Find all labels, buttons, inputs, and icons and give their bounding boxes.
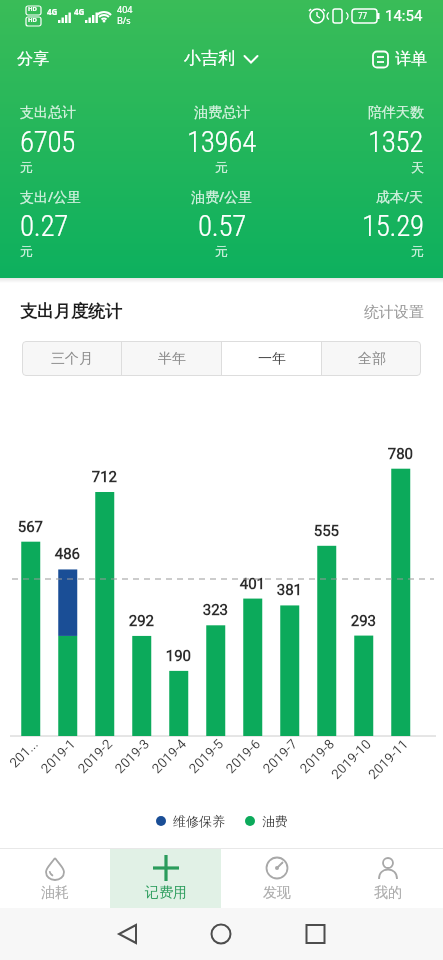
staticText: 我的 [374, 884, 402, 902]
staticText: 油费/公里 [191, 187, 253, 206]
button[interactable]: 油耗 [0, 849, 110, 908]
button[interactable]: 一年 [222, 341, 321, 376]
staticText: 元 [215, 159, 228, 175]
staticText: 分享 [17, 49, 49, 69]
staticText: 15.29 [362, 209, 424, 243]
staticText: 发现 [263, 884, 291, 902]
staticText: 元 [20, 243, 33, 259]
staticText: 详单 [395, 49, 427, 69]
staticText: 13964 [187, 125, 256, 159]
staticText: 陪伴天数 [368, 104, 424, 122]
staticText: 成本/天 [376, 187, 424, 206]
button[interactable]: 统计设置 [364, 303, 424, 322]
staticText: 半年 [158, 350, 186, 368]
staticText: 6705 [20, 125, 76, 159]
button[interactable]: 记费用 [110, 849, 221, 908]
staticText: 支出总计 [20, 104, 76, 122]
staticText: 元 [411, 243, 424, 259]
staticText: 支出/公里 [20, 187, 82, 206]
staticText: 元 [215, 243, 228, 259]
staticText: 元 [20, 159, 33, 175]
staticText: 0.57 [198, 209, 246, 243]
staticText: 小吉利 [184, 48, 235, 69]
staticText: 油费 [262, 813, 288, 829]
staticText: 记费用 [145, 884, 187, 902]
staticText: 天 [411, 159, 424, 175]
staticText: 全部 [358, 350, 386, 368]
staticText: 维修保养 [173, 813, 225, 829]
button[interactable]: 详单 [372, 49, 427, 69]
staticText: 三个月 [51, 350, 93, 368]
staticText: 油耗 [41, 884, 69, 902]
staticText: 油费总计 [194, 104, 250, 122]
button[interactable]: 三个月 [22, 341, 121, 376]
staticText: 统计设置 [364, 303, 424, 322]
staticText: 1352 [368, 125, 424, 159]
button[interactable]: 全部 [322, 341, 421, 376]
button[interactable]: 小吉利 [184, 48, 259, 69]
staticText: 支出月度统计 [20, 301, 122, 322]
button[interactable]: 我的 [332, 849, 443, 908]
staticText: 一年 [258, 350, 286, 368]
button[interactable]: 分享 [17, 49, 49, 69]
button[interactable]: 半年 [122, 341, 221, 376]
staticText: 0.27 [20, 209, 68, 243]
button[interactable]: 发现 [221, 849, 332, 908]
